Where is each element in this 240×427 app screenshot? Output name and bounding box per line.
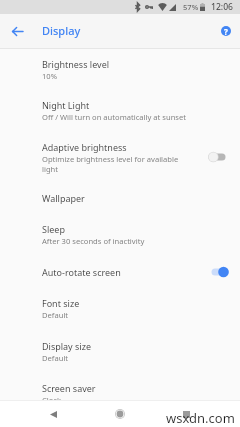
staticText: Wallpaper (42, 192, 85, 204)
staticText: Adaptive brightness (42, 141, 127, 153)
staticText: ? (224, 26, 228, 36)
staticText: 12:06 (211, 1, 234, 13)
button[interactable]: Font size (0, 287, 240, 330)
staticText: Off / Will turn on automatically at suns… (42, 112, 187, 122)
staticText: Night Light (42, 99, 90, 111)
staticText: Font size (42, 297, 80, 309)
staticText: Display size (42, 340, 91, 352)
staticText: Default (42, 310, 69, 320)
button[interactable]: Help (216, 21, 236, 41)
staticText: Brightness level (42, 58, 110, 70)
staticText: Default (42, 353, 69, 363)
button[interactable]: Night Light (0, 89, 240, 132)
staticText: 10% (42, 71, 57, 81)
button[interactable]: Back (6, 20, 28, 42)
button[interactable]: Screen saver (0, 372, 240, 400)
staticText: After 30 seconds of inactivity (42, 236, 145, 246)
button[interactable]: Back (40, 401, 67, 427)
button[interactable]: Auto-rotate screen (0, 256, 240, 287)
staticText: wsxdn.com (166, 409, 235, 427)
button[interactable]: Recents (173, 401, 200, 427)
button[interactable]: Brightness level (0, 49, 240, 89)
button[interactable]: Toggle (207, 149, 229, 165)
button[interactable]: Sleep (0, 213, 240, 256)
button[interactable]: Display size (0, 330, 240, 372)
staticText: Sleep (42, 223, 65, 235)
button[interactable]: Wallpaper (0, 182, 240, 213)
staticText: Optimize brightness level for available … (42, 154, 186, 174)
staticText: Display (42, 23, 81, 38)
staticText: 57% (183, 2, 199, 12)
staticText: Screen saver (42, 382, 96, 394)
button[interactable]: Home (106, 401, 133, 427)
staticText: Clock (42, 395, 62, 400)
button[interactable]: Adaptive brightness (0, 132, 240, 182)
button[interactable]: Toggle (207, 264, 229, 280)
staticText: Auto-rotate screen (42, 266, 121, 278)
